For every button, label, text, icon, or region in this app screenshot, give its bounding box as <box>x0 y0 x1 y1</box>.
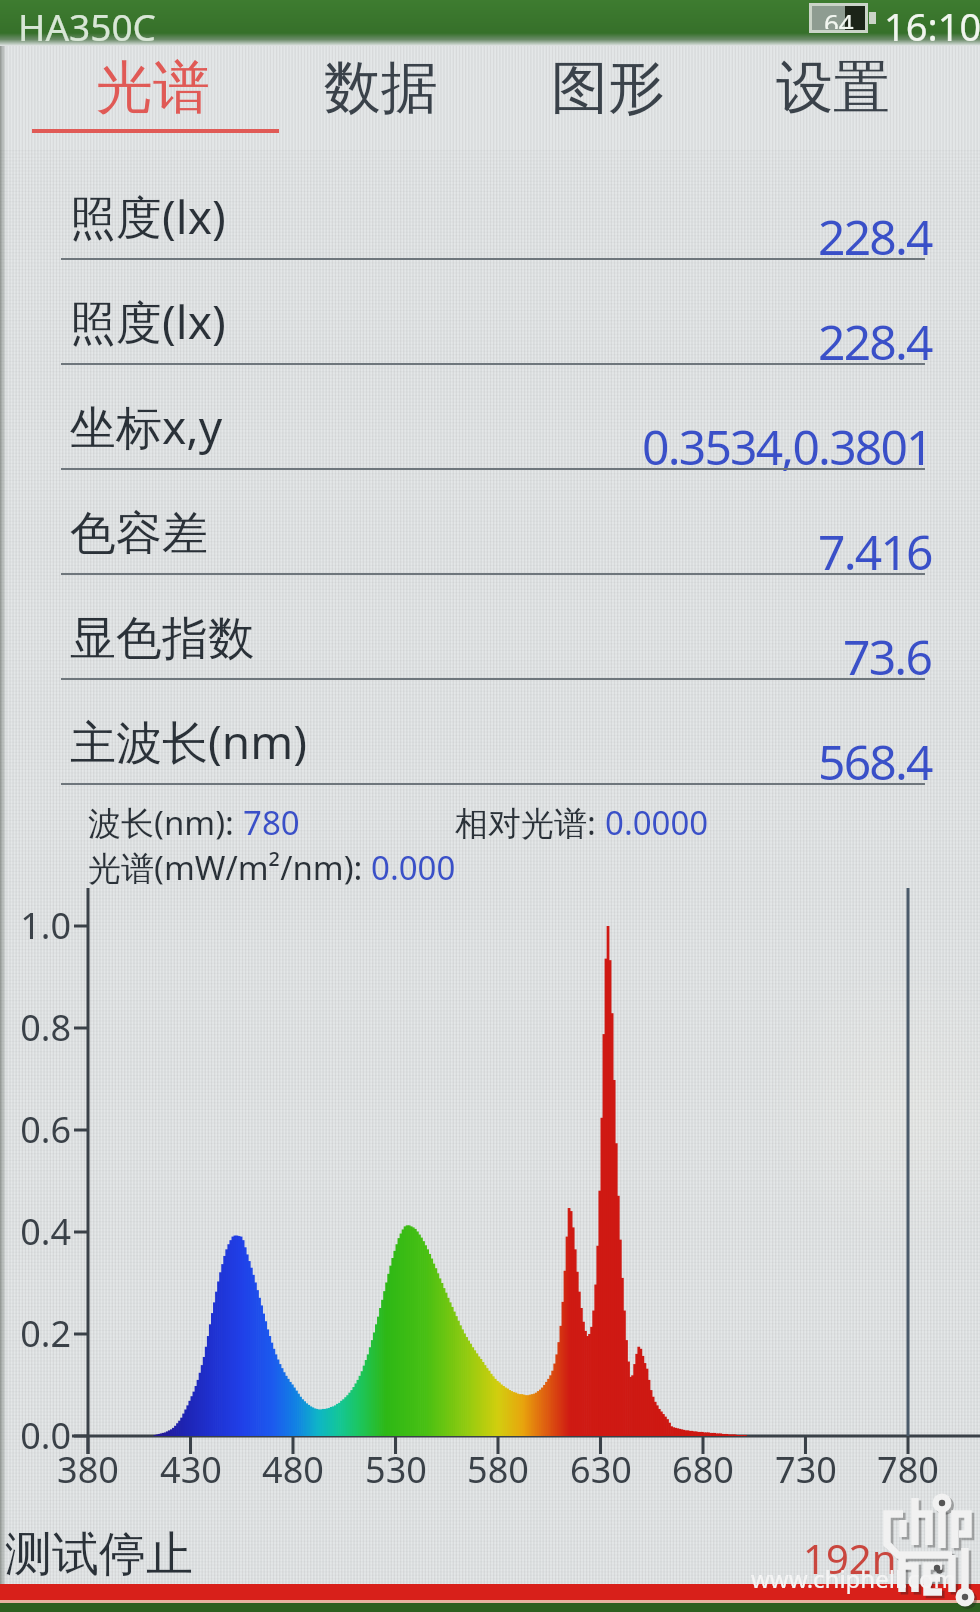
staticText: 测试停止 <box>5 1525 193 1584</box>
staticText: 设置 <box>776 52 890 124</box>
staticText: 73.6 <box>843 624 932 689</box>
button[interactable]: 数据 <box>268 43 494 138</box>
staticText: 0.3534,0.3801 <box>642 414 932 479</box>
staticText: 16:10 <box>884 0 980 46</box>
staticText: 580 <box>448 1445 548 1494</box>
staticText: 显色指数 <box>70 610 254 668</box>
staticText: 380 <box>38 1445 138 1494</box>
button[interactable]: 光谱 <box>40 43 266 138</box>
button[interactable]: 显色指数 <box>0 575 980 680</box>
button[interactable]: 设置 <box>720 43 946 138</box>
staticText: 0.0 <box>0 1411 71 1460</box>
staticText: 相对光谱: <box>455 800 605 845</box>
staticText: 780 <box>243 800 300 845</box>
button[interactable]: 坐标x,y <box>0 365 980 470</box>
staticText: 228.4 <box>818 309 932 374</box>
staticText: 0.2 <box>0 1309 71 1358</box>
staticText: 630 <box>551 1445 651 1494</box>
staticText: 波长(nm): <box>88 800 243 845</box>
button[interactable]: 主波长(nm) <box>0 680 980 785</box>
staticText: 64 <box>824 5 854 29</box>
button[interactable]: 图形 <box>495 43 721 138</box>
staticText: 色容差 <box>70 505 208 563</box>
staticText: 7.416 <box>818 519 932 584</box>
staticText: 430 <box>141 1445 241 1494</box>
button[interactable]: 照度(lx) <box>0 260 980 365</box>
staticText: HA350C <box>18 1 156 47</box>
staticText: 照度(lx) <box>70 290 226 353</box>
staticText: 照度(lx) <box>70 185 226 248</box>
staticText: 0.0000 <box>605 800 709 845</box>
staticText: 0.6 <box>0 1105 71 1154</box>
staticText: 0.4 <box>0 1207 71 1256</box>
button[interactable]: 色容差 <box>0 470 980 575</box>
staticText: 530 <box>346 1445 446 1494</box>
staticText: 数据 <box>324 52 438 124</box>
staticText: 680 <box>653 1445 753 1494</box>
staticText: 568.4 <box>818 729 932 794</box>
staticText: 1.0 <box>0 901 71 950</box>
staticText: 228.4 <box>818 204 932 269</box>
staticText: 光谱(mW/m²/nm): <box>88 845 371 890</box>
staticText: 730 <box>756 1445 856 1494</box>
staticText: 192n <box>803 1531 897 1585</box>
staticText: 480 <box>243 1445 343 1494</box>
button[interactable]: 照度(lx) <box>0 155 980 260</box>
staticText: 光谱 <box>96 52 210 124</box>
staticText: 780 <box>858 1445 958 1494</box>
staticText: 0.000 <box>371 845 456 890</box>
staticText: 图形 <box>551 52 665 124</box>
staticText: 主波长(nm) <box>70 710 308 773</box>
staticText: www.chiphell.com <box>751 1562 957 1595</box>
staticText: 0.8 <box>0 1003 71 1052</box>
staticText: 坐标x,y <box>70 395 223 458</box>
